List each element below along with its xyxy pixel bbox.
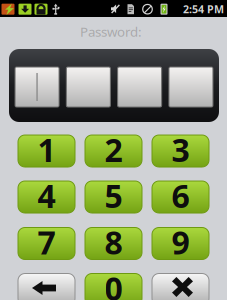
button[interactable]: Cancel [152,273,209,300]
staticText: 5 [104,174,122,217]
staticText: 2 [104,128,122,171]
button[interactable]: 6 [152,181,209,213]
staticText: Password: [80,23,142,40]
button[interactable]: 7 [18,227,75,259]
button[interactable]: 3 [152,135,209,167]
staticText: 6 [171,174,189,217]
staticText: 9 [171,221,189,263]
staticText: 7 [37,221,55,263]
button[interactable]: 5 [85,181,142,213]
staticText: 2:54 PM [183,2,224,16]
staticText: 3 [171,128,189,171]
staticText: 0 [104,267,122,300]
button[interactable]: 9 [152,227,209,259]
button[interactable]: 4 [18,181,75,213]
button[interactable]: 2 [85,135,142,167]
button[interactable]: 1 [18,135,75,167]
button[interactable]: Backspace [18,273,75,300]
staticText: 1 [37,128,55,171]
button[interactable]: 0 [85,273,142,300]
staticText: 8 [104,221,122,263]
button[interactable]: 8 [85,227,142,259]
staticText: 4 [37,174,55,217]
